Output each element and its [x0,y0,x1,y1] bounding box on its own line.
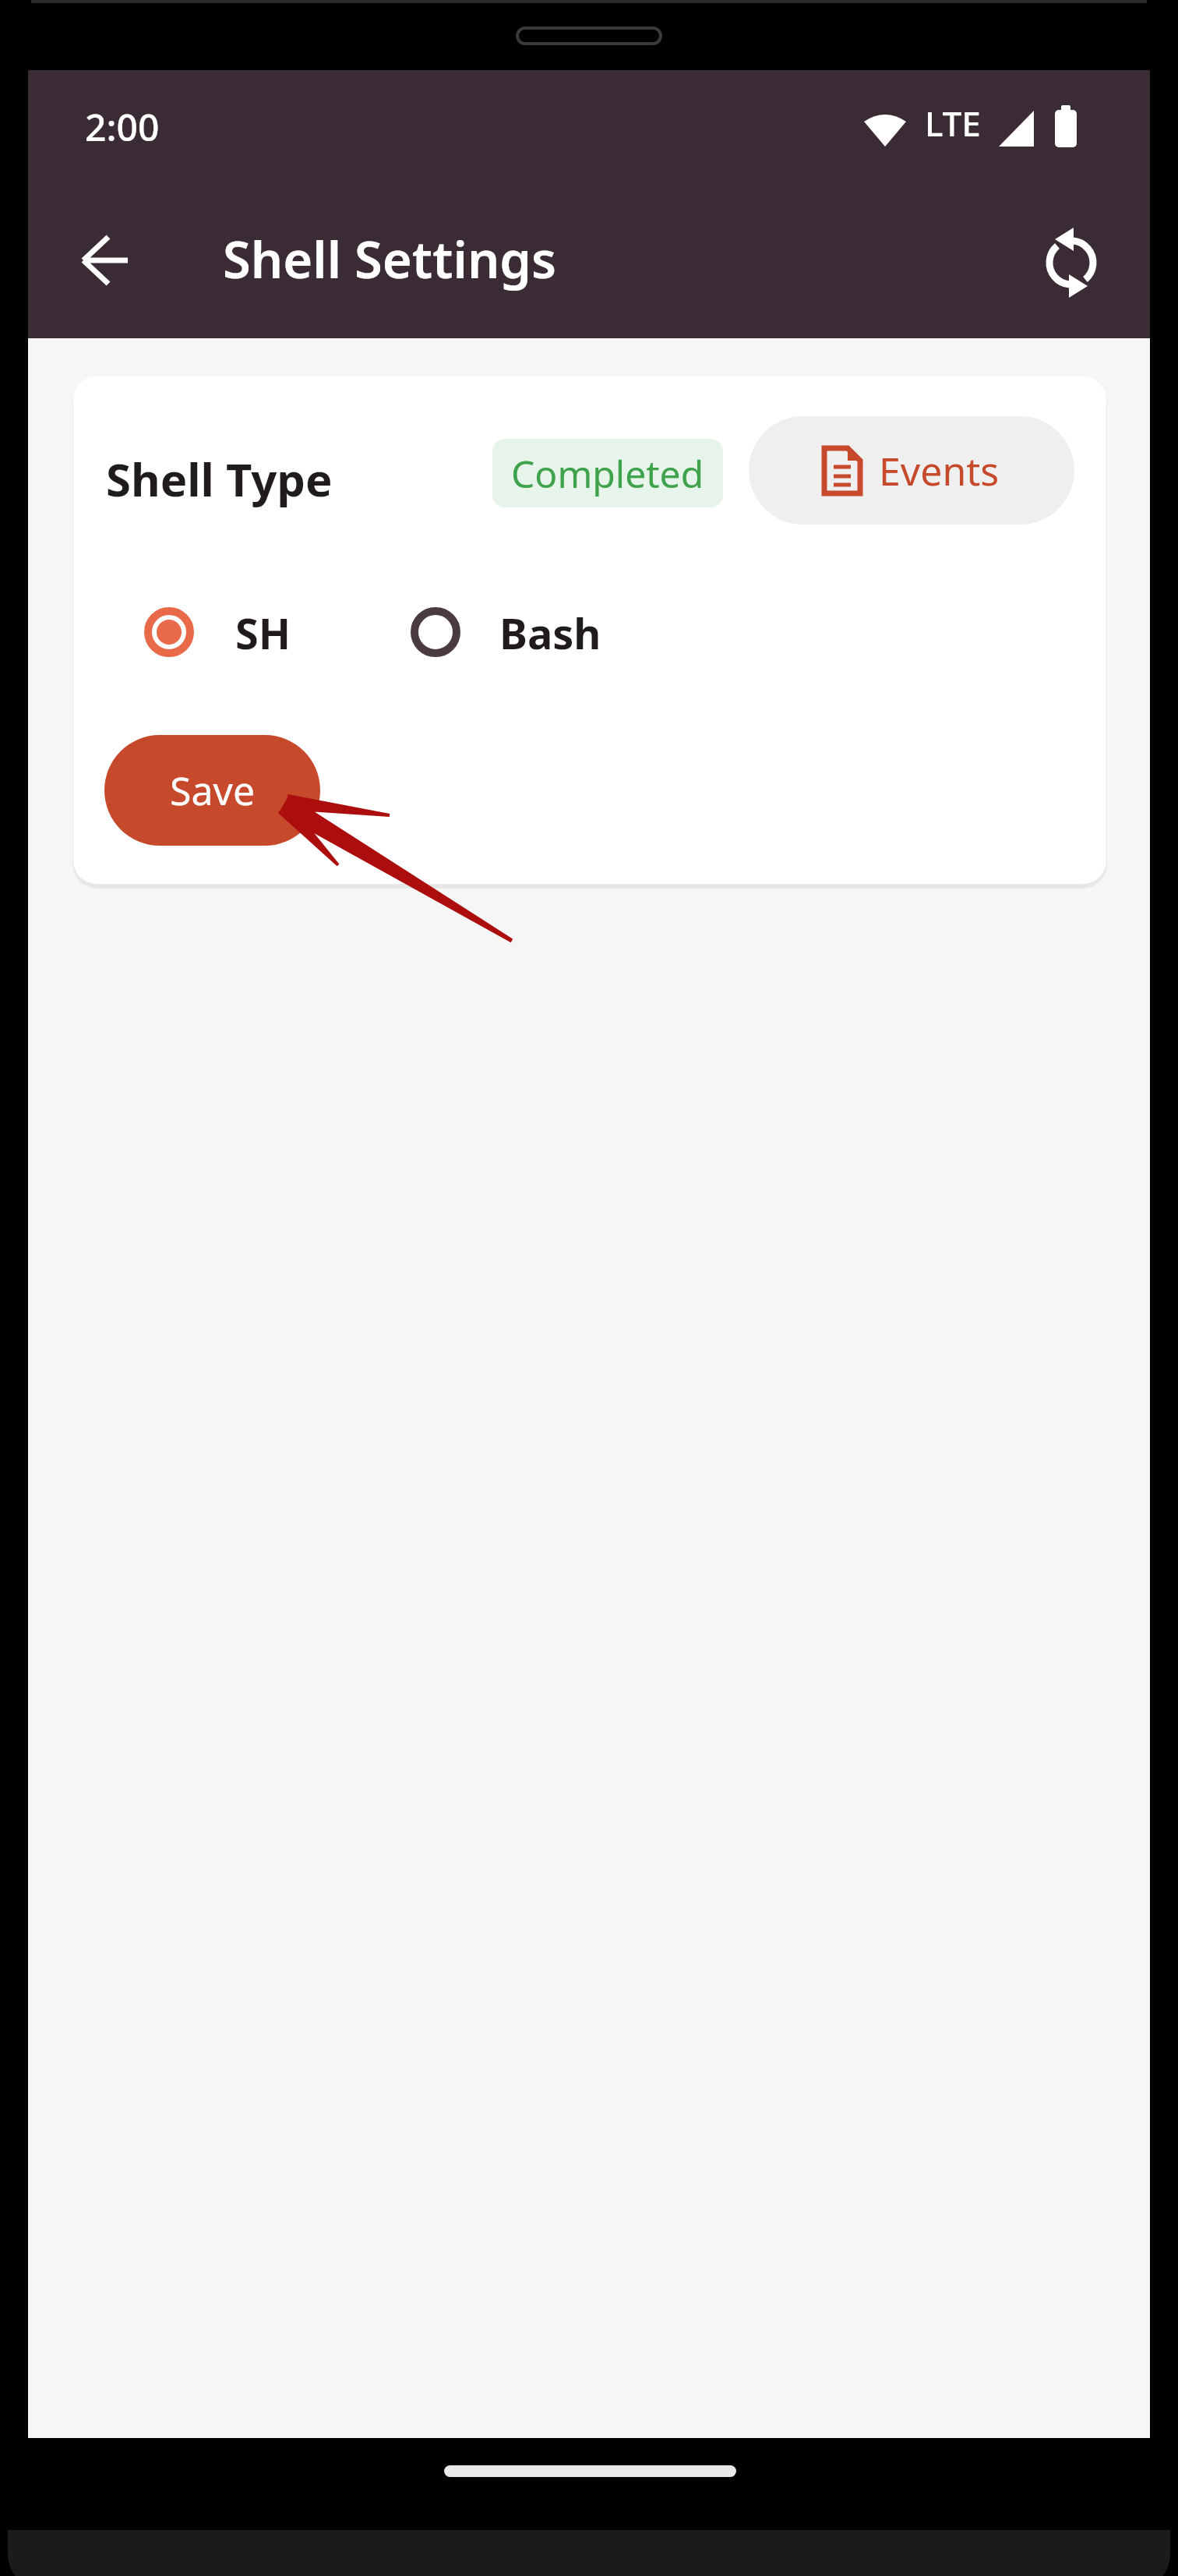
button[interactable]: Bash [411,604,601,660]
button[interactable] [1037,228,1106,296]
button[interactable]: Completed [492,439,723,507]
staticText: Shell Settings [223,224,557,294]
staticText: Shell Type [106,448,333,510]
staticText: Events [879,444,1000,497]
staticText: Save [170,764,256,817]
button[interactable]: Events [749,416,1074,525]
staticText: Bash [499,604,601,660]
staticText: 2:00 [85,101,160,152]
button[interactable]: SH [144,604,291,660]
button[interactable] [73,229,136,292]
staticText: SH [235,604,291,660]
staticText: LTE [925,100,981,147]
staticText: Completed [511,448,704,499]
button[interactable]: Save [104,735,320,846]
